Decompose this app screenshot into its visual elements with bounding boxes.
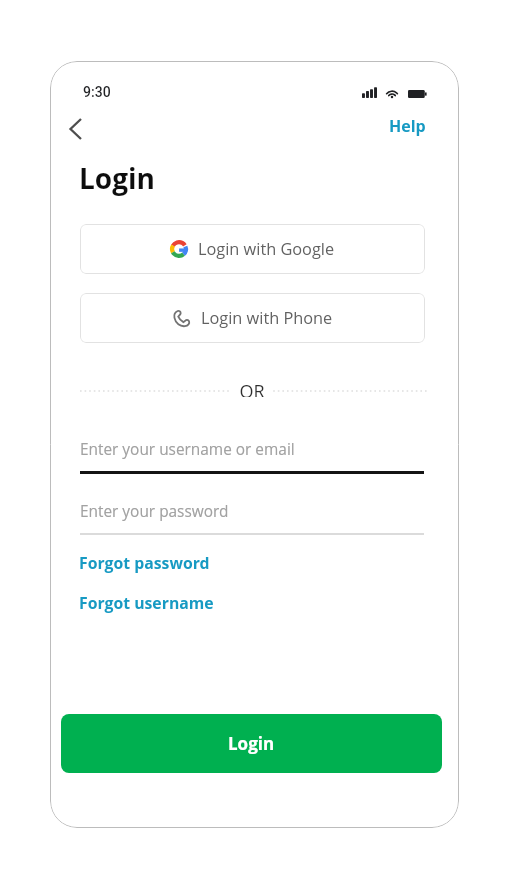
button[interactable]: Forgot password: [79, 552, 210, 574]
staticText: Enter your username or email: [80, 439, 295, 460]
staticText: Login: [79, 159, 155, 197]
staticText: Login with Google: [198, 238, 335, 260]
staticText: Help: [389, 115, 426, 137]
button[interactable]: Back: [55, 109, 95, 149]
button[interactable]: Login: [61, 714, 442, 773]
button[interactable]: Help: [389, 115, 426, 137]
button[interactable]: Login with Phone: [80, 293, 425, 343]
staticText: OR: [239, 379, 265, 397]
staticText: Login with Phone: [201, 307, 333, 329]
staticText: Login: [228, 732, 275, 755]
button[interactable]: Login with Google: [80, 224, 425, 274]
button[interactable]: Forgot username: [79, 592, 214, 614]
button[interactable]: Enter your password: [80, 491, 424, 537]
staticText: Forgot password: [79, 552, 210, 574]
staticText: 9:30: [83, 84, 111, 100]
button[interactable]: Enter your username or email: [80, 429, 424, 475]
staticText: Forgot username: [79, 592, 214, 614]
staticText: Enter your password: [80, 501, 229, 522]
